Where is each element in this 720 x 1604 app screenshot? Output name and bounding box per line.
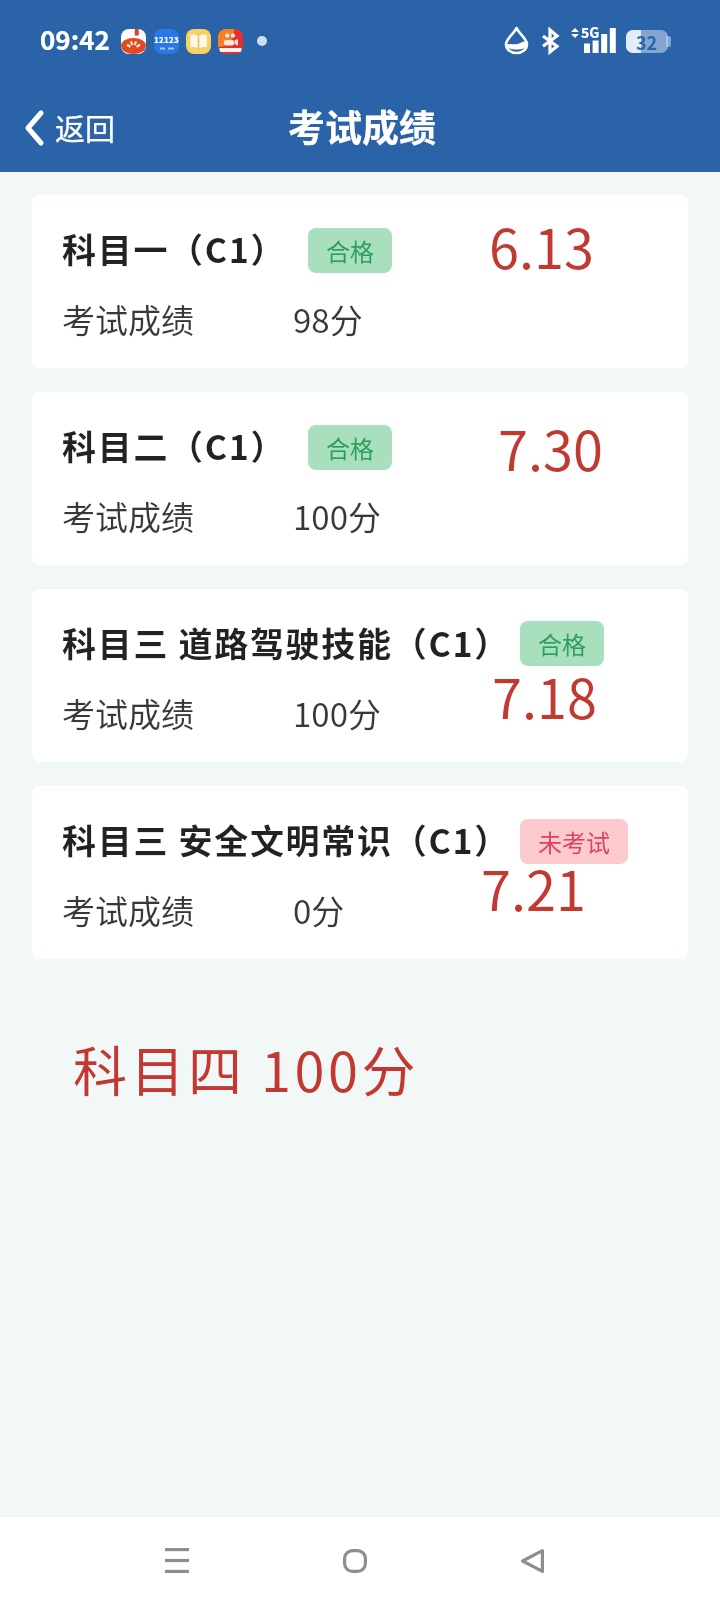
staticText: 考试成绩 bbox=[62, 886, 194, 934]
button[interactable]: 科目三 道路驾驶技能（C1） bbox=[32, 589, 688, 762]
staticText: 5G bbox=[581, 22, 600, 42]
staticText: 7.21 bbox=[481, 848, 586, 926]
staticText: 科目三 安全文明常识（C1） bbox=[62, 815, 510, 864]
button[interactable]: 科目一（C1） bbox=[32, 195, 688, 368]
staticText: 32 bbox=[636, 30, 658, 52]
staticText: 科目二（C1） bbox=[62, 421, 287, 470]
staticText: 未考试 bbox=[538, 824, 610, 859]
staticText: 09:42 bbox=[40, 20, 110, 58]
staticText: 7.18 bbox=[492, 656, 597, 734]
staticText: 12123 bbox=[154, 34, 179, 46]
staticText: 考试成绩 bbox=[62, 689, 194, 737]
staticText: 100分 bbox=[293, 492, 381, 540]
staticText: 100分 bbox=[293, 689, 381, 737]
button[interactable]: 科目二（C1） bbox=[32, 392, 688, 565]
button[interactable]: Home bbox=[307, 1517, 403, 1604]
staticText: 6.13 bbox=[489, 206, 594, 284]
staticText: 返回 bbox=[55, 105, 115, 148]
staticText: 考试成绩 bbox=[62, 295, 194, 343]
staticText: 合格 bbox=[326, 430, 374, 465]
staticText: 考试成绩 bbox=[62, 492, 194, 540]
staticText: 科目四 100分 bbox=[73, 1029, 420, 1107]
button[interactable]: Recent apps bbox=[129, 1517, 225, 1604]
staticText: 科目三 道路驾驶技能（C1） bbox=[62, 618, 510, 667]
staticText: 科目一（C1） bbox=[62, 224, 287, 273]
button[interactable]: Back bbox=[484, 1517, 580, 1604]
button[interactable]: 科目三 安全文明常识（C1） bbox=[32, 786, 688, 959]
staticText: 考试成绩 bbox=[288, 99, 436, 153]
staticText: 合格 bbox=[326, 233, 374, 268]
staticText: 7.30 bbox=[498, 408, 603, 486]
staticText: 98分 bbox=[293, 295, 363, 343]
staticText: 合格 bbox=[538, 626, 586, 661]
staticText: 0分 bbox=[293, 886, 345, 934]
button[interactable]: 返回 bbox=[0, 99, 131, 158]
